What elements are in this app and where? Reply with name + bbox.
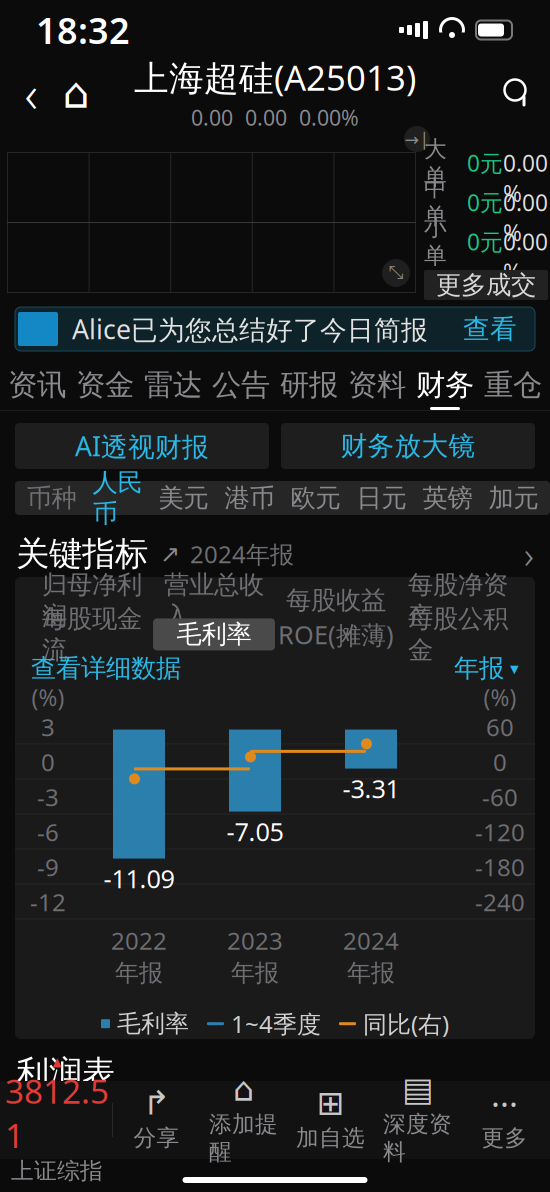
staticText: -120	[475, 816, 525, 848]
button[interactable]: 每股收益	[275, 584, 397, 616]
staticText: 财务放大镜	[340, 430, 475, 462]
staticText: 英镑	[422, 482, 472, 513]
button[interactable]: 资金	[71, 363, 139, 410]
button[interactable]: ▲	[2, 1082, 112, 1158]
button[interactable]: 人民币	[84, 481, 150, 515]
button[interactable]: ▤	[374, 1082, 461, 1158]
staticText: 日元	[356, 482, 406, 513]
staticText: ⌂	[62, 69, 89, 117]
staticText: 人民币	[92, 467, 142, 529]
button[interactable]: 每股净资产	[397, 584, 519, 616]
staticText: AI透视财报	[75, 428, 209, 464]
staticText: 0元	[467, 187, 503, 217]
button[interactable]: 营业总收入	[153, 584, 275, 616]
staticText: 小单	[424, 214, 447, 269]
staticText: -240	[475, 886, 525, 918]
button[interactable]: 更多成交	[424, 270, 548, 300]
button[interactable]: ↱	[113, 1082, 200, 1158]
button[interactable]: Alice已为您总结好了今日简报	[15, 307, 535, 351]
staticText: 0.00 0.00 0.00%	[191, 103, 359, 132]
staticText: 每股公积金	[408, 603, 508, 665]
staticText: 财务	[416, 367, 474, 403]
staticText: Alice已为您总结好了今日简报	[72, 311, 428, 347]
button[interactable]: 加元	[480, 481, 546, 515]
staticText: 0.00%	[503, 196, 548, 287]
staticText: 年报	[231, 958, 279, 988]
staticText: ⌂	[233, 1070, 254, 1108]
staticText: -9	[37, 851, 59, 883]
staticText: 归母净利润	[42, 569, 142, 631]
button[interactable]: 资料	[343, 363, 411, 410]
staticText: 营业总收入	[164, 569, 264, 631]
staticText: -180	[475, 851, 525, 883]
button[interactable]: 币种	[18, 481, 84, 515]
button[interactable]: ⊞	[287, 1082, 374, 1158]
staticText: 毛利率	[117, 1009, 189, 1038]
button[interactable]: ROE(摊薄)	[275, 618, 397, 650]
staticText: 更多成交	[436, 269, 536, 300]
staticText: 1~4季度	[231, 1008, 321, 1040]
button[interactable]: Back	[10, 68, 52, 118]
staticText: 欧元	[290, 482, 340, 513]
staticText: 年报	[115, 958, 163, 988]
button[interactable]: 查看详细数据	[31, 653, 181, 684]
button[interactable]: 公告	[207, 363, 275, 410]
staticText: 美元	[158, 482, 208, 513]
staticText: 3	[41, 711, 55, 743]
staticText: 0.00%	[503, 118, 548, 208]
staticText: ↱	[142, 1084, 170, 1122]
button[interactable]: 每股公积金	[397, 618, 519, 650]
staticText: ↗	[160, 540, 180, 568]
button[interactable]: ⌂	[200, 1082, 287, 1158]
button[interactable]: 财务放大镜	[281, 423, 535, 469]
staticText: 每股现金流	[42, 603, 142, 665]
staticText: ▾	[510, 659, 519, 678]
button[interactable]: Search	[494, 68, 540, 118]
staticText: 查看	[463, 313, 517, 345]
button[interactable]: Collapse quote panel	[402, 125, 432, 153]
staticText: 资金	[76, 367, 134, 403]
button[interactable]: 英镑	[414, 481, 480, 515]
button[interactable]: 年报	[454, 653, 519, 684]
staticText: 大单	[424, 135, 447, 191]
staticText: 公告	[212, 367, 270, 403]
staticText: ···	[491, 1081, 518, 1125]
staticText: 0	[493, 746, 507, 778]
staticText: -6	[37, 816, 59, 848]
button[interactable]: 港币	[216, 481, 282, 515]
button[interactable]: 欧元	[282, 481, 348, 515]
staticText: 18:32	[36, 6, 130, 54]
button[interactable]: 关键指标	[0, 531, 550, 577]
staticText: ‹	[24, 59, 37, 127]
staticText: ›	[524, 529, 534, 579]
button[interactable]: 研报	[275, 363, 343, 410]
button[interactable]: 雷达	[139, 363, 207, 410]
staticText: 上证综指	[11, 1157, 103, 1185]
staticText: 同比(右)	[363, 1008, 449, 1040]
button[interactable]: 毛利率	[153, 618, 275, 650]
staticText: 2024	[343, 924, 399, 956]
button[interactable]: 日元	[348, 481, 414, 515]
button[interactable]: AI透视财报	[15, 423, 269, 469]
staticText: 添加提醒	[209, 1110, 278, 1166]
button[interactable]: 每股现金流	[31, 618, 153, 650]
staticText: 资讯	[8, 367, 66, 403]
staticText: -12	[30, 886, 66, 918]
button[interactable]: 美元	[150, 481, 216, 515]
staticText: ⊞	[316, 1084, 344, 1122]
button[interactable]: Expand chart	[381, 258, 411, 288]
button[interactable]: 重仓	[479, 363, 547, 410]
button[interactable]: 资讯	[3, 363, 71, 410]
button[interactable]: ···	[461, 1082, 548, 1158]
button[interactable]: 财务	[411, 363, 479, 410]
staticText: -11.09	[103, 862, 174, 895]
staticText: 0	[41, 746, 55, 778]
staticText: 币种	[26, 482, 76, 513]
button[interactable]: 归母净利润	[31, 584, 153, 616]
staticText: 分享	[133, 1124, 179, 1152]
staticText: ROE(摊薄)	[278, 617, 394, 651]
staticText: 查看详细数据	[31, 653, 181, 684]
staticText: 港币	[224, 482, 274, 513]
staticText: -60	[482, 781, 518, 813]
button[interactable]: Home	[52, 68, 100, 118]
